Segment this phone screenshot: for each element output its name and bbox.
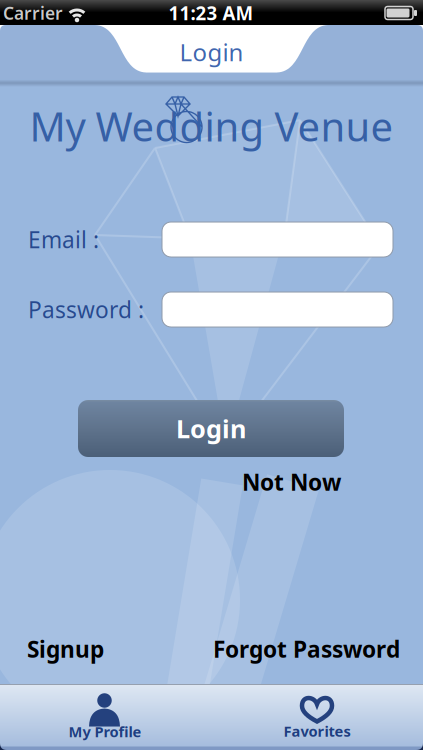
staticText: Login — [176, 412, 246, 445]
staticText: Signup — [27, 634, 104, 664]
button[interactable]: Signup — [27, 634, 104, 664]
staticText: 11:23 AM — [168, 1, 253, 25]
staticText: My Wedding Venue — [29, 99, 393, 152]
staticText: Not Now — [242, 467, 341, 497]
staticText: My Profile — [68, 722, 141, 741]
button[interactable]: Password text field — [162, 292, 393, 327]
staticText: Password : — [28, 294, 144, 324]
button[interactable]: Favorites — [237, 690, 397, 738]
staticText: Login — [179, 36, 243, 68]
staticText: Carrier — [3, 1, 63, 24]
button[interactable]: Email text field — [162, 222, 393, 257]
staticText: Favorites — [283, 721, 350, 741]
button[interactable]: Not Now — [242, 467, 341, 497]
staticText: Forgot Password — [213, 634, 400, 664]
button[interactable]: Forgot Password — [213, 634, 400, 664]
button[interactable]: Login — [78, 400, 344, 457]
staticText: Email : — [28, 224, 99, 254]
button[interactable]: My Profile — [25, 690, 185, 738]
